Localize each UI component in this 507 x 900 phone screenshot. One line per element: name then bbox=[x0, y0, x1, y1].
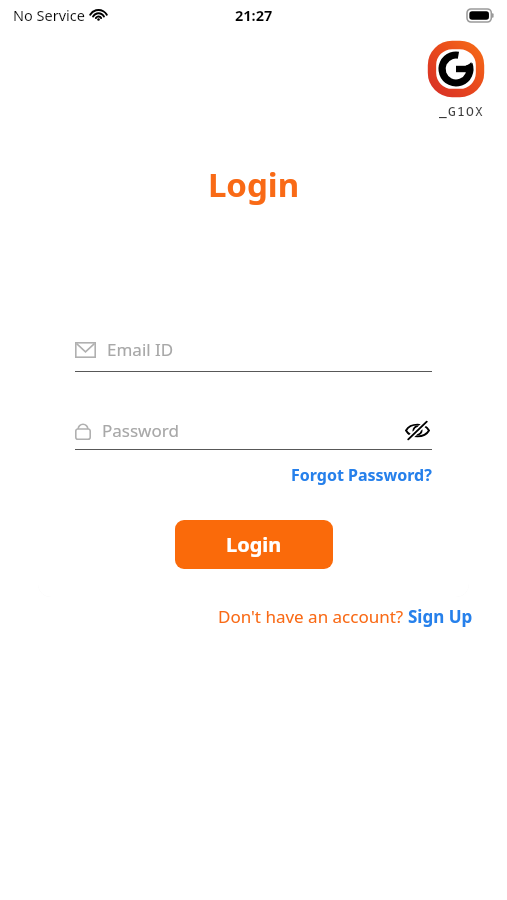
staticText: Login bbox=[0, 162, 507, 207]
staticText: _G1OX bbox=[439, 102, 485, 120]
staticText: Don't have an account? bbox=[218, 605, 408, 628]
button[interactable]: Don't have an account? bbox=[218, 605, 473, 628]
button[interactable]: Forgot Password? bbox=[291, 462, 432, 488]
staticText: Forgot Password? bbox=[291, 464, 432, 486]
button[interactable]: Show password bbox=[402, 415, 432, 445]
button[interactable]: Password bbox=[75, 415, 432, 445]
staticText: 21:27 bbox=[235, 5, 273, 25]
other: G1OX logo bbox=[425, 38, 487, 100]
staticText: Login bbox=[226, 531, 282, 558]
button[interactable]: Login bbox=[175, 520, 333, 569]
staticText: No Service bbox=[13, 5, 85, 25]
staticText: Email ID bbox=[107, 338, 174, 361]
staticText: Sign Up bbox=[408, 605, 473, 628]
staticText: Password bbox=[102, 419, 402, 442]
button[interactable]: Email ID bbox=[75, 338, 432, 361]
